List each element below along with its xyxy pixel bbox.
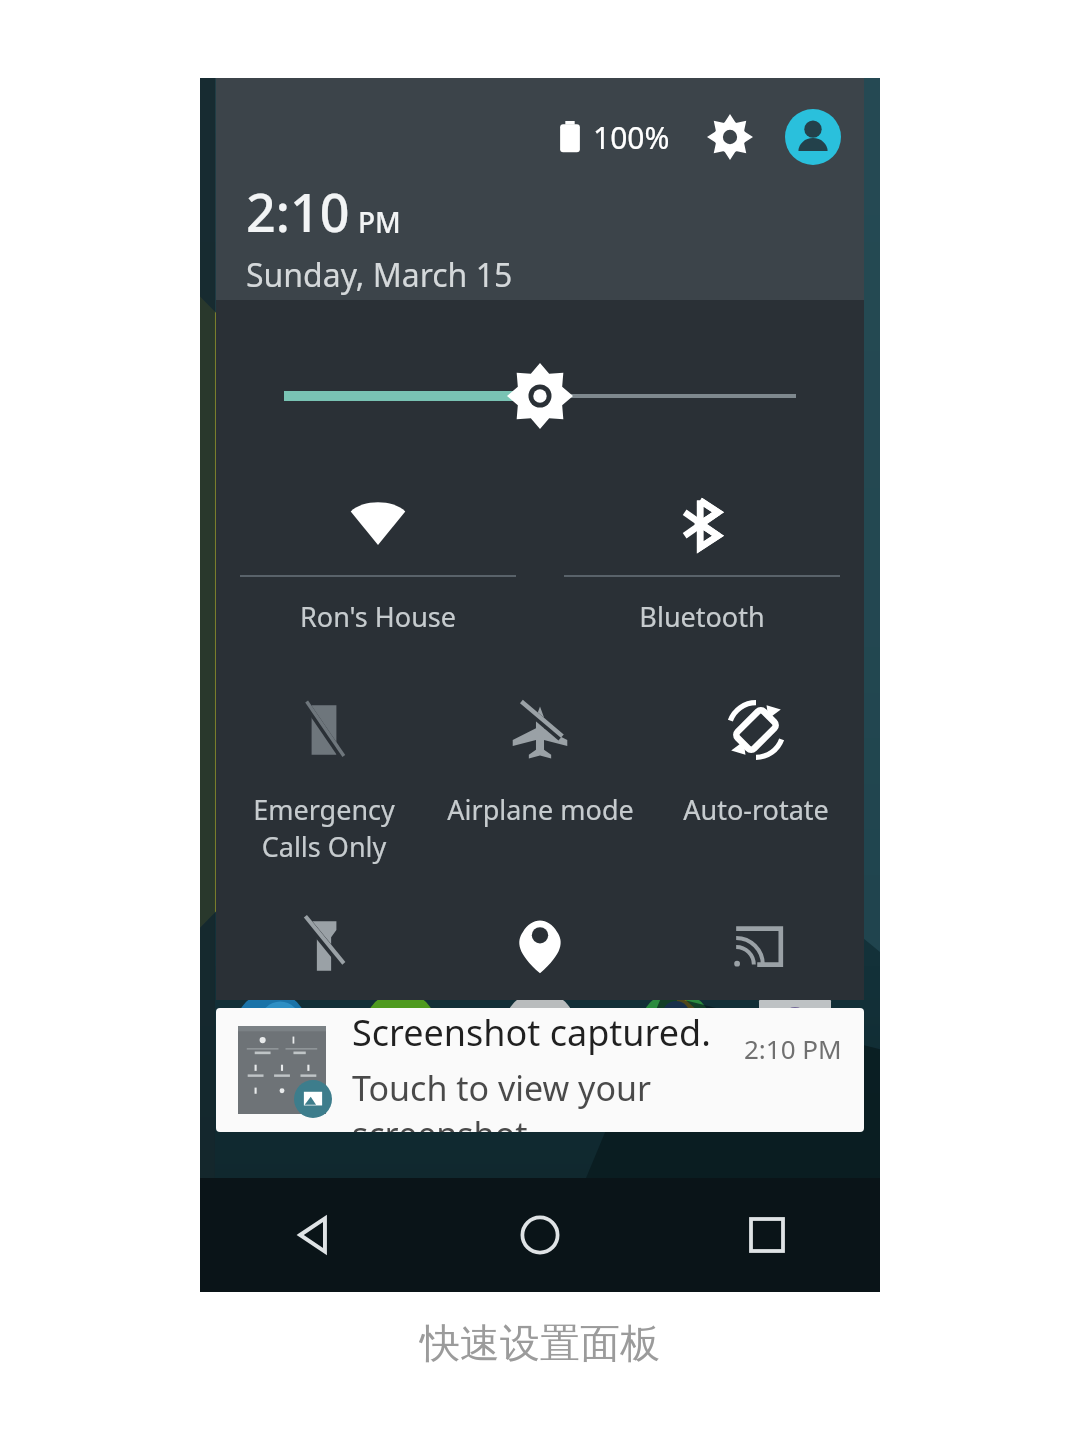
- button[interactable]: Auto-rotate: [648, 691, 864, 828]
- button[interactable]: Back: [200, 1178, 426, 1292]
- staticText: Emergency Calls Only: [222, 791, 426, 865]
- staticText: Screenshot captured.: [352, 1008, 711, 1057]
- staticText: Ron's House: [300, 598, 456, 635]
- staticText: PM: [358, 203, 401, 241]
- button[interactable]: Recent apps: [653, 1178, 880, 1292]
- staticText: 2:10 PM: [744, 1031, 842, 1066]
- staticText: Bluetooth: [639, 598, 765, 635]
- button[interactable]: Brightness: [216, 368, 864, 424]
- button[interactable]: Airplane mode: [432, 691, 648, 828]
- staticText: 快速设置面板: [420, 1318, 660, 1368]
- button[interactable]: Bluetooth: [540, 486, 864, 635]
- staticText: 100%: [593, 117, 670, 158]
- staticText: 2:10: [246, 176, 350, 247]
- button[interactable]: Location: [432, 907, 648, 1000]
- staticText: Auto-rotate: [683, 791, 829, 828]
- button[interactable]: Home: [426, 1178, 653, 1292]
- staticText: Touch to view your screenshot.: [352, 1065, 744, 1132]
- button[interactable]: Flashlight: [216, 907, 432, 1000]
- button[interactable]: Settings: [704, 111, 756, 163]
- button[interactable]: Ron's House: [216, 486, 540, 635]
- button[interactable]: Cast screen: [648, 907, 864, 1000]
- button[interactable]: Screenshot captured.: [216, 1008, 864, 1132]
- staticText: Airplane mode: [447, 791, 634, 828]
- button[interactable]: User account: [784, 108, 842, 166]
- button[interactable]: Emergency Calls Only: [216, 691, 432, 865]
- staticText: Sunday, March 15: [246, 253, 513, 297]
